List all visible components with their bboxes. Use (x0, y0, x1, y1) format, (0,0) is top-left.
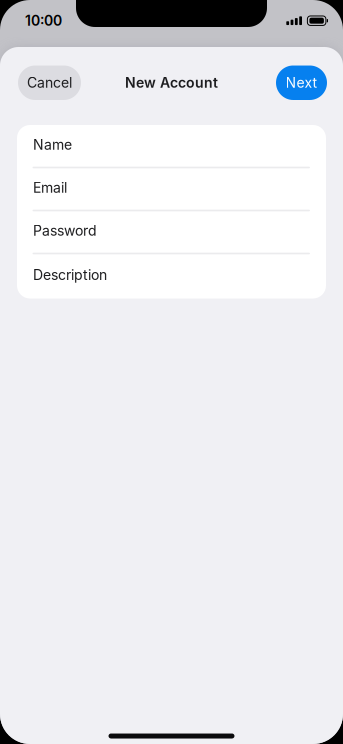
button[interactable]: Email (17, 168, 326, 211)
button[interactable]: Description (17, 254, 326, 298)
button[interactable]: Cancel (18, 65, 81, 100)
button[interactable]: Password (17, 211, 326, 254)
staticText: 10:00 (25, 12, 62, 29)
button[interactable]: Name (17, 125, 326, 168)
staticText: Description (33, 266, 107, 283)
staticText: Password (33, 222, 97, 239)
button[interactable]: Next (276, 65, 327, 100)
staticText: Email (33, 179, 67, 196)
staticText: Name (33, 136, 72, 153)
staticText: Next (285, 74, 317, 91)
staticText: New Account (125, 74, 218, 91)
staticText: Cancel (27, 74, 72, 91)
